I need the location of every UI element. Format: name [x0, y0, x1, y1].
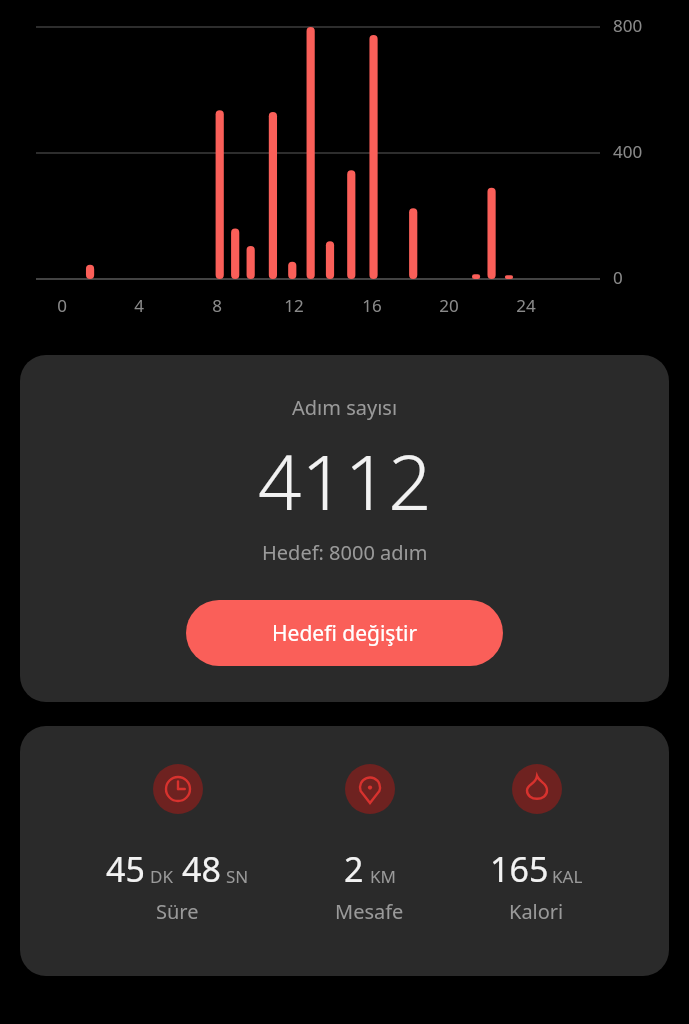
other: Distance	[345, 764, 395, 814]
staticText: KM	[370, 865, 396, 888]
staticText: Süre	[156, 898, 199, 925]
staticText: DK	[150, 865, 173, 888]
staticText: Hedefi değiştir	[272, 619, 418, 648]
staticText: 165	[490, 846, 549, 892]
button[interactable]: Distance	[335, 764, 404, 925]
staticText: 800	[613, 14, 643, 37]
button[interactable]: Hedefi değiştir	[186, 600, 503, 666]
staticText: Adım sayısı	[292, 394, 398, 421]
other: Duration	[153, 764, 203, 814]
staticText: Mesafe	[335, 898, 404, 925]
staticText: 12	[274, 294, 314, 317]
staticText: 20	[429, 294, 469, 317]
button[interactable]: Duration	[106, 764, 249, 925]
staticText: 4112	[258, 429, 432, 533]
staticText: 48	[182, 846, 221, 892]
button[interactable]: Calories	[490, 764, 583, 925]
staticText: 400	[613, 140, 643, 163]
staticText: 0	[42, 294, 82, 317]
staticText: 8	[197, 294, 237, 317]
other: Calories	[512, 764, 562, 814]
staticText: SN	[226, 865, 249, 888]
staticText: Kalori	[509, 898, 564, 925]
staticText: 45	[106, 846, 145, 892]
staticText: 2	[344, 846, 364, 892]
staticText: 4	[119, 294, 159, 317]
staticText: 16	[352, 294, 392, 317]
staticText: Hedef: 8000 adım	[262, 539, 428, 566]
staticText: 24	[506, 294, 546, 317]
staticText: 0	[613, 266, 623, 289]
staticText: KAL	[552, 865, 583, 888]
